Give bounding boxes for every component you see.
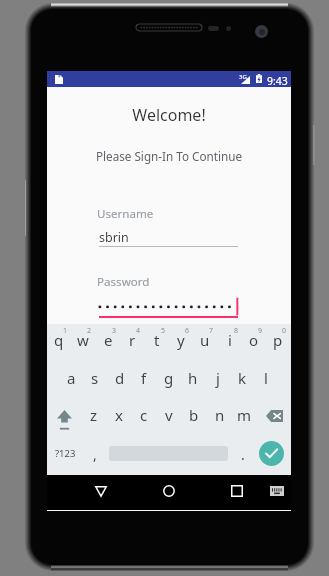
staticText: g [164,368,174,388]
button[interactable]: Shift [47,401,81,439]
staticText: 1 [63,326,68,336]
staticText: z [90,405,98,425]
button[interactable]: 6 [169,324,193,362]
staticText: l [264,368,268,388]
staticText: Please Sign-In To Continue [47,148,291,164]
staticText: a [67,368,76,388]
staticText: w [77,330,89,350]
button[interactable]: . [232,435,254,471]
button[interactable]: 0 [266,324,290,362]
staticText: 6 [185,326,190,336]
staticText: o [249,330,259,350]
staticText: 7 [209,326,214,336]
staticText: v [165,405,173,425]
button[interactable]: d [108,359,132,396]
staticText: 0 [282,326,287,336]
button[interactable]: g [157,359,181,396]
staticText: 3G [239,73,247,81]
staticText: q [54,330,64,350]
staticText: 4 [136,326,141,336]
staticText: b [189,405,199,425]
button[interactable]: j [206,359,230,396]
staticText: 5 [161,326,166,336]
button[interactable]: s [83,359,107,396]
staticText: m [237,405,252,425]
button[interactable]: 8 [218,324,242,362]
staticText: t [154,330,160,350]
button[interactable]: b [181,396,206,434]
button[interactable]: 7 [193,324,217,362]
staticText: Password [97,274,150,290]
staticText: e [104,330,113,350]
staticText: d [115,368,125,388]
staticText: r [129,330,136,350]
button[interactable]: 1 [47,324,71,362]
button[interactable]: 5 [145,324,169,362]
button[interactable]: l [254,359,278,396]
button[interactable]: f [132,359,156,396]
staticText: h [188,368,198,388]
staticText: s [91,368,99,388]
button[interactable]: ?123 [47,435,83,471]
staticText: x [115,405,123,425]
staticText: u [200,330,210,350]
button[interactable]: 2 [71,324,95,362]
staticText: k [238,368,247,388]
staticText: 3 [112,326,117,336]
staticText: ?123 [55,447,76,460]
button[interactable]: a [59,359,83,396]
button[interactable]: Back [91,481,111,501]
button[interactable]: n [207,396,232,434]
staticText: , [93,445,97,464]
staticText: i [228,330,232,350]
button[interactable]: v [156,396,181,434]
staticText: . [241,445,245,464]
button[interactable]: Home [159,481,179,501]
button[interactable]: Enter [255,435,287,471]
button[interactable]: x [106,396,131,434]
button[interactable]: m [232,396,257,434]
button[interactable]: 3 [96,324,120,362]
staticText: 9 [258,326,263,336]
staticText: 9:43 [267,74,288,88]
staticText: Welcome! [47,104,291,126]
staticText: j [216,368,220,388]
staticText: c [140,405,148,425]
button[interactable]: 9 [242,324,266,362]
staticText: 2 [87,326,92,336]
button[interactable]: Switch keyboard [267,481,287,501]
staticText: p [273,330,283,350]
staticText: f [141,368,147,388]
staticText: n [215,405,225,425]
button[interactable]: h [181,359,205,396]
button[interactable]: c [131,396,156,434]
staticText: y [177,330,185,350]
button[interactable]: Backspace [257,397,291,435]
staticText: 8 [234,326,239,336]
button[interactable]: z [81,396,106,434]
button[interactable]: , [84,435,106,471]
button[interactable]: Recents [227,481,247,501]
staticText: sbrin [99,229,129,246]
button[interactable]: k [230,359,254,396]
button[interactable]: 4 [120,324,144,362]
staticText: Username [97,206,154,222]
